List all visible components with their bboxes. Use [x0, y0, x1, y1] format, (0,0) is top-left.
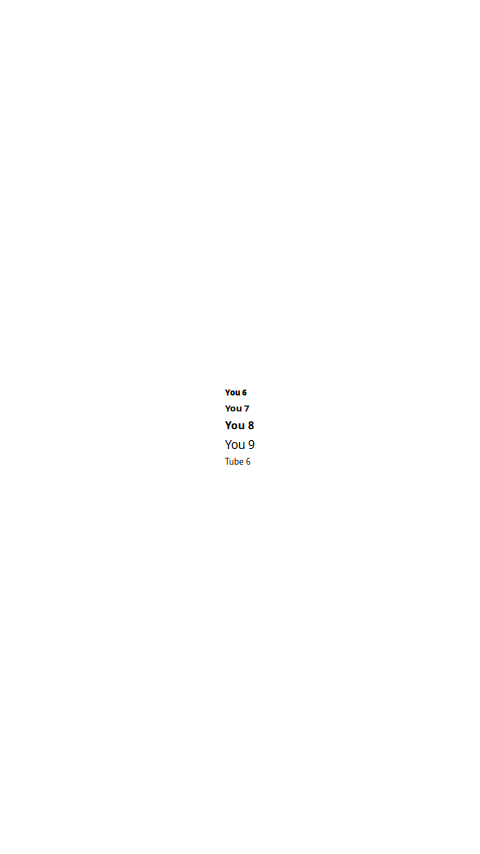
staticText: Tube 6: [225, 456, 251, 467]
staticText: You 7: [225, 402, 249, 414]
staticText: You 9: [225, 436, 255, 452]
staticText: You 8: [225, 418, 254, 432]
staticText: You 6: [225, 387, 247, 398]
